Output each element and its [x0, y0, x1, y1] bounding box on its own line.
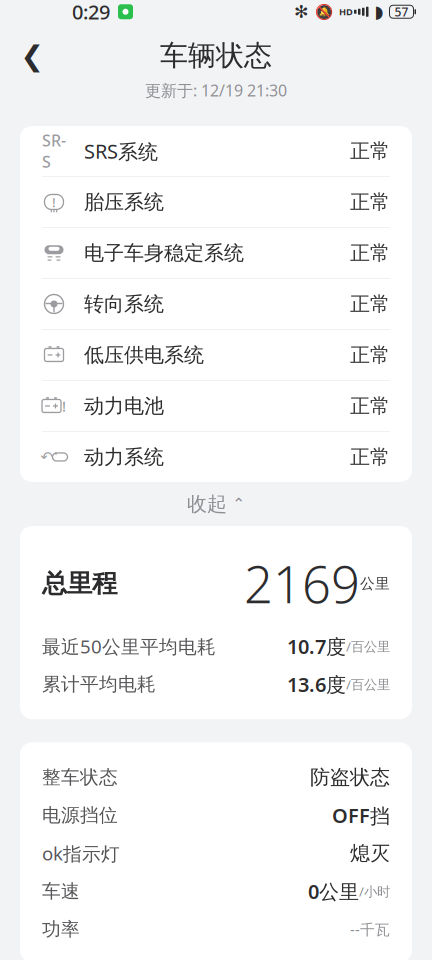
- staticText: 2169: [244, 550, 360, 617]
- staticText: OFF挡: [332, 802, 390, 829]
- button[interactable]: SRS: [20, 126, 412, 177]
- staticText: 正常: [350, 292, 390, 316]
- button[interactable]: 电子车身稳定系统: [20, 228, 412, 279]
- staticText: 收起: [187, 492, 227, 516]
- staticText: 电源挡位: [42, 804, 118, 827]
- button[interactable]: ↶: [20, 432, 412, 482]
- staticText: 转向系统: [84, 292, 164, 316]
- staticText: 熄灭: [350, 841, 390, 866]
- staticText: 胎压系统: [84, 190, 164, 214]
- button[interactable]: Back: [10, 34, 54, 78]
- staticText: 13.6度: [287, 671, 346, 698]
- staticText: 正常: [350, 190, 390, 214]
- staticText: 动力电池: [84, 394, 164, 418]
- staticText: !: [62, 396, 66, 416]
- staticText: 🔕: [315, 3, 333, 20]
- button[interactable]: !: [20, 177, 412, 228]
- staticText: /小时: [359, 882, 390, 900]
- staticText: ⌃: [232, 495, 245, 513]
- staticText: 0:29: [72, 0, 110, 25]
- staticText: 动力系统: [84, 445, 164, 469]
- staticText: 总里程: [42, 568, 117, 599]
- staticText: ✻: [294, 2, 309, 22]
- staticText: SRS系统: [84, 138, 158, 164]
- staticText: 公里: [360, 575, 390, 593]
- staticText: ❮: [20, 40, 43, 72]
- staticText: 10.7度: [287, 633, 346, 660]
- staticText: ↶: [40, 449, 52, 465]
- staticText: 累计平均电耗: [42, 673, 156, 696]
- staticText: 低压供电系统: [84, 343, 204, 367]
- staticText: 车速: [42, 880, 80, 903]
- staticText: SRS: [42, 130, 66, 172]
- staticText: 57: [394, 4, 408, 20]
- staticText: /百公里: [346, 637, 390, 655]
- staticText: --千瓦: [350, 919, 390, 939]
- staticText: ◗: [374, 2, 383, 22]
- button[interactable]: 收起: [0, 482, 432, 526]
- staticText: 电子车身稳定系统: [84, 241, 244, 265]
- button[interactable]: !: [20, 381, 412, 432]
- staticText: 功率: [42, 918, 80, 941]
- staticText: 正常: [350, 394, 390, 418]
- staticText: HD: [339, 5, 353, 18]
- staticText: 整车状态: [42, 766, 118, 789]
- staticText: 0公里: [308, 878, 359, 905]
- staticText: /百公里: [346, 675, 390, 693]
- button[interactable]: 转向系统: [20, 279, 412, 330]
- staticText: 正常: [350, 343, 390, 367]
- staticText: 正常: [350, 445, 390, 469]
- staticText: 更新于: 12/19 21:30: [145, 80, 287, 101]
- staticText: 最近50公里平均电耗: [42, 634, 216, 659]
- staticText: !: [52, 193, 56, 211]
- staticText: 防盗状态: [310, 765, 390, 790]
- staticText: 正常: [350, 241, 390, 265]
- button[interactable]: 低压供电系统: [20, 330, 412, 381]
- staticText: ok指示灯: [42, 841, 120, 866]
- staticText: 车辆状态: [160, 38, 272, 73]
- staticText: 正常: [350, 139, 390, 163]
